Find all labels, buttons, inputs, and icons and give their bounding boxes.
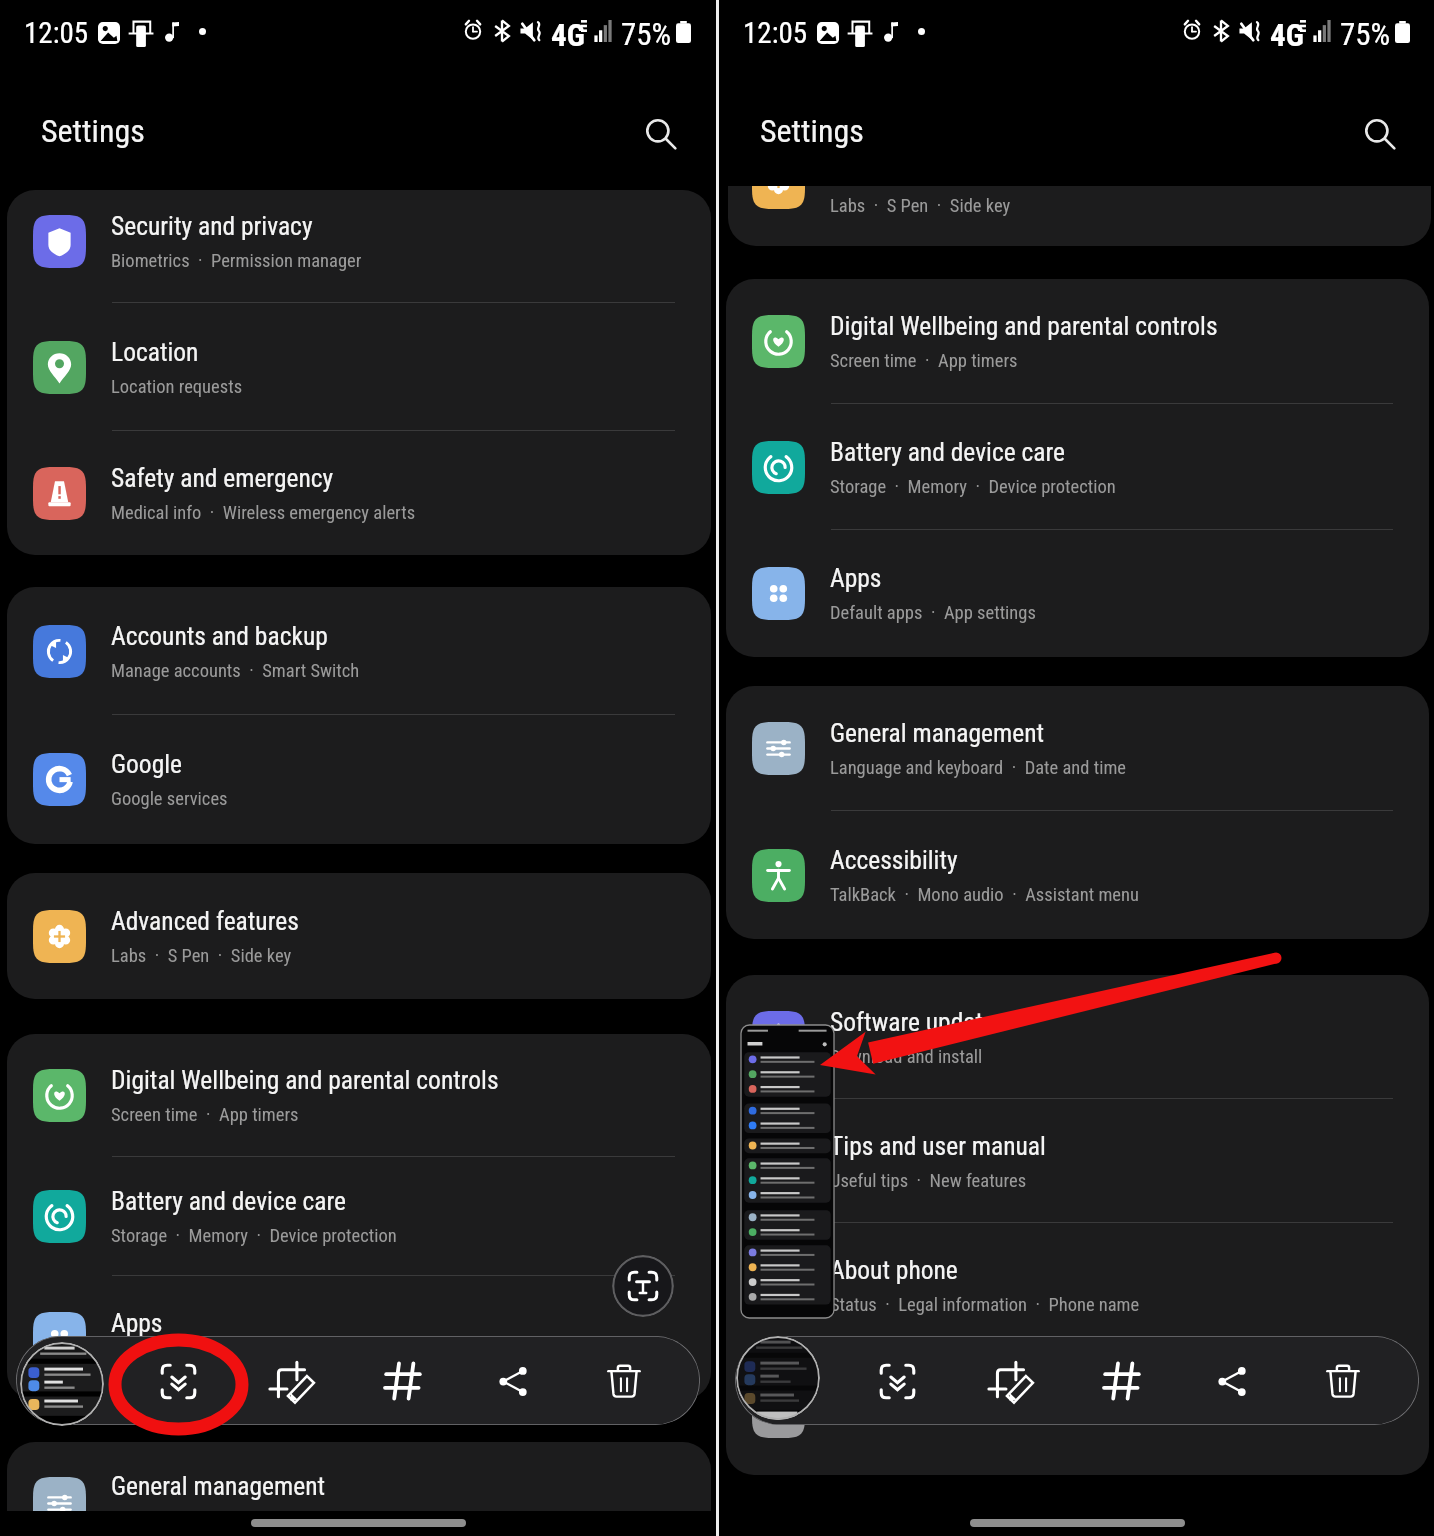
staticText: Screen time · App timers [830, 350, 1018, 372]
button[interactable]: Advanced features [7, 873, 711, 999]
button[interactable]: Software update [726, 975, 1429, 1099]
button[interactable]: Digital Wellbeing and parental controls [7, 1034, 711, 1157]
button[interactable]: Crop and edit [975, 1346, 1045, 1416]
staticText: 4G [1270, 17, 1304, 53]
staticText: 12:05 [24, 16, 89, 50]
staticText: Screen time · App timers [111, 1104, 299, 1126]
staticText: Manage accounts · Smart Switch [111, 660, 360, 682]
button[interactable]: Delete [589, 1346, 659, 1416]
staticText: General management [111, 1471, 326, 1501]
staticText: Apps [111, 1308, 163, 1338]
button[interactable]: Extract text [612, 1255, 674, 1317]
staticText: Apps [830, 563, 882, 593]
staticText: Google services [111, 788, 228, 810]
button[interactable]: Digital Wellbeing and parental controls [726, 279, 1429, 404]
button[interactable]: Delete [1308, 1346, 1378, 1416]
staticText: 12:05 [743, 16, 808, 50]
button[interactable]: Tags [1087, 1346, 1157, 1416]
button[interactable]: Safety and emergency [7, 431, 711, 555]
staticText: Labs · S Pen · Side key [111, 945, 292, 967]
staticText: Battery and device care [111, 1186, 346, 1216]
button[interactable]: Share [478, 1346, 548, 1416]
button[interactable]: Screenshot preview [20, 1342, 104, 1426]
button[interactable]: Apps [726, 530, 1429, 657]
staticText: Storage · Memory · Device protection [830, 476, 1116, 498]
staticText: Developer options [830, 1381, 1012, 1411]
staticText: Accounts and backup [111, 621, 328, 651]
staticText: Language and keyboard · Date and time [830, 757, 1127, 779]
button[interactable]: Tips and user manual [726, 1099, 1429, 1223]
button[interactable]: Search [1346, 100, 1412, 166]
button[interactable]: Accessibility [726, 811, 1429, 939]
button[interactable]: Google [7, 715, 711, 844]
staticText: Settings [41, 112, 145, 150]
staticText: Google [111, 749, 183, 779]
staticText: Biometrics · Permission manager [111, 250, 362, 272]
staticText: Security and privacy [111, 211, 313, 241]
staticText: Settings [760, 112, 864, 150]
button[interactable]: Scroll capture [862, 1346, 932, 1416]
button[interactable]: Tags [368, 1346, 438, 1416]
staticText: Digital Wellbeing and parental controls [111, 1065, 499, 1095]
button[interactable]: Share [1197, 1346, 1267, 1416]
staticText: 75% [1340, 16, 1391, 52]
button[interactable]: General management [726, 686, 1429, 811]
button[interactable]: Location [7, 303, 711, 431]
staticText: Digital Wellbeing and parental controls [830, 311, 1218, 341]
staticText: Useful tips · New features [830, 1170, 1027, 1192]
staticText: Storage · Memory · Device protection [111, 1225, 397, 1247]
staticText: Labs · S Pen · Side key [830, 195, 1011, 217]
staticText: Location [111, 337, 199, 367]
staticText: TalkBack · Mono audio · Assistant menu [830, 884, 1139, 906]
button[interactable]: Apps [7, 1276, 711, 1400]
button[interactable]: Accounts and backup [7, 587, 711, 715]
staticText: Safety and emergency [111, 463, 334, 493]
button[interactable]: Search [627, 100, 693, 166]
staticText: General management [830, 718, 1045, 748]
button[interactable]: General management [7, 1442, 711, 1511]
button[interactable]: Crop and edit [256, 1346, 326, 1416]
staticText: Download and install [830, 1046, 983, 1068]
staticText: 4G [551, 17, 585, 53]
staticText: Accessibility [830, 845, 958, 875]
staticText: Status · Legal information · Phone name [830, 1294, 1140, 1316]
staticText: 75% [621, 16, 672, 52]
staticText: About phone [830, 1255, 958, 1285]
button[interactable]: Security and privacy [7, 190, 711, 303]
staticText: Default apps · App settings [111, 1347, 317, 1369]
button[interactable]: Developer options [726, 1347, 1429, 1475]
staticText: Medical info · Wireless emergency alerts [111, 502, 416, 524]
button[interactable]: About phone [726, 1223, 1429, 1347]
staticText: Tips and user manual [830, 1131, 1046, 1161]
button[interactable]: Screenshot preview [736, 1336, 820, 1420]
staticText: Default apps · App settings [830, 602, 1036, 624]
staticText: Software update [830, 1007, 996, 1037]
button[interactable]: Battery and device care [7, 1157, 711, 1276]
button[interactable]: Scroll capture [143, 1346, 213, 1416]
staticText: Location requests [111, 376, 243, 398]
button[interactable]: Battery and device care [726, 404, 1429, 530]
button[interactable]: Labs · S Pen · Side key [728, 186, 1431, 246]
staticText: Battery and device care [830, 437, 1065, 467]
staticText: Advanced features [111, 906, 299, 936]
